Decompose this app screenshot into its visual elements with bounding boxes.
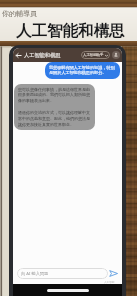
button[interactable]: 人工智能助手 xyxy=(81,51,110,59)
button[interactable]: Send xyxy=(109,269,118,278)
staticText: 人工智能和構思 xyxy=(24,52,61,59)
button[interactable]: 您可以想像任何事情，就是這個世界是由很多東西組成的。我們可以把人類所能想像的事物… xyxy=(14,84,95,130)
button[interactable]: Account xyxy=(112,51,120,59)
staticText: 人工智能和構思 xyxy=(16,21,125,41)
staticText: 您可以想像任何事情，就是這個世界是由很多東西組成的。我們可以把人類所能想像的事物… xyxy=(18,87,91,127)
staticText: 我想瞭解有關人工智能的知識，特別是關於人工智能和構思的部分。 xyxy=(49,65,116,76)
staticText: 你的輔導員 xyxy=(2,9,37,18)
button[interactable]: 向 AI 輸入問題 xyxy=(17,268,108,279)
staticText: 人工智能 xyxy=(104,280,115,283)
button[interactable]: 我想瞭解有關人工智能的知識，特別是關於人工智能和構思的部分。 xyxy=(45,62,120,79)
staticText: 人工智能助手 xyxy=(83,53,104,57)
staticText: 向 AI 輸入問題 xyxy=(21,271,49,277)
button[interactable]: Back xyxy=(14,51,23,60)
